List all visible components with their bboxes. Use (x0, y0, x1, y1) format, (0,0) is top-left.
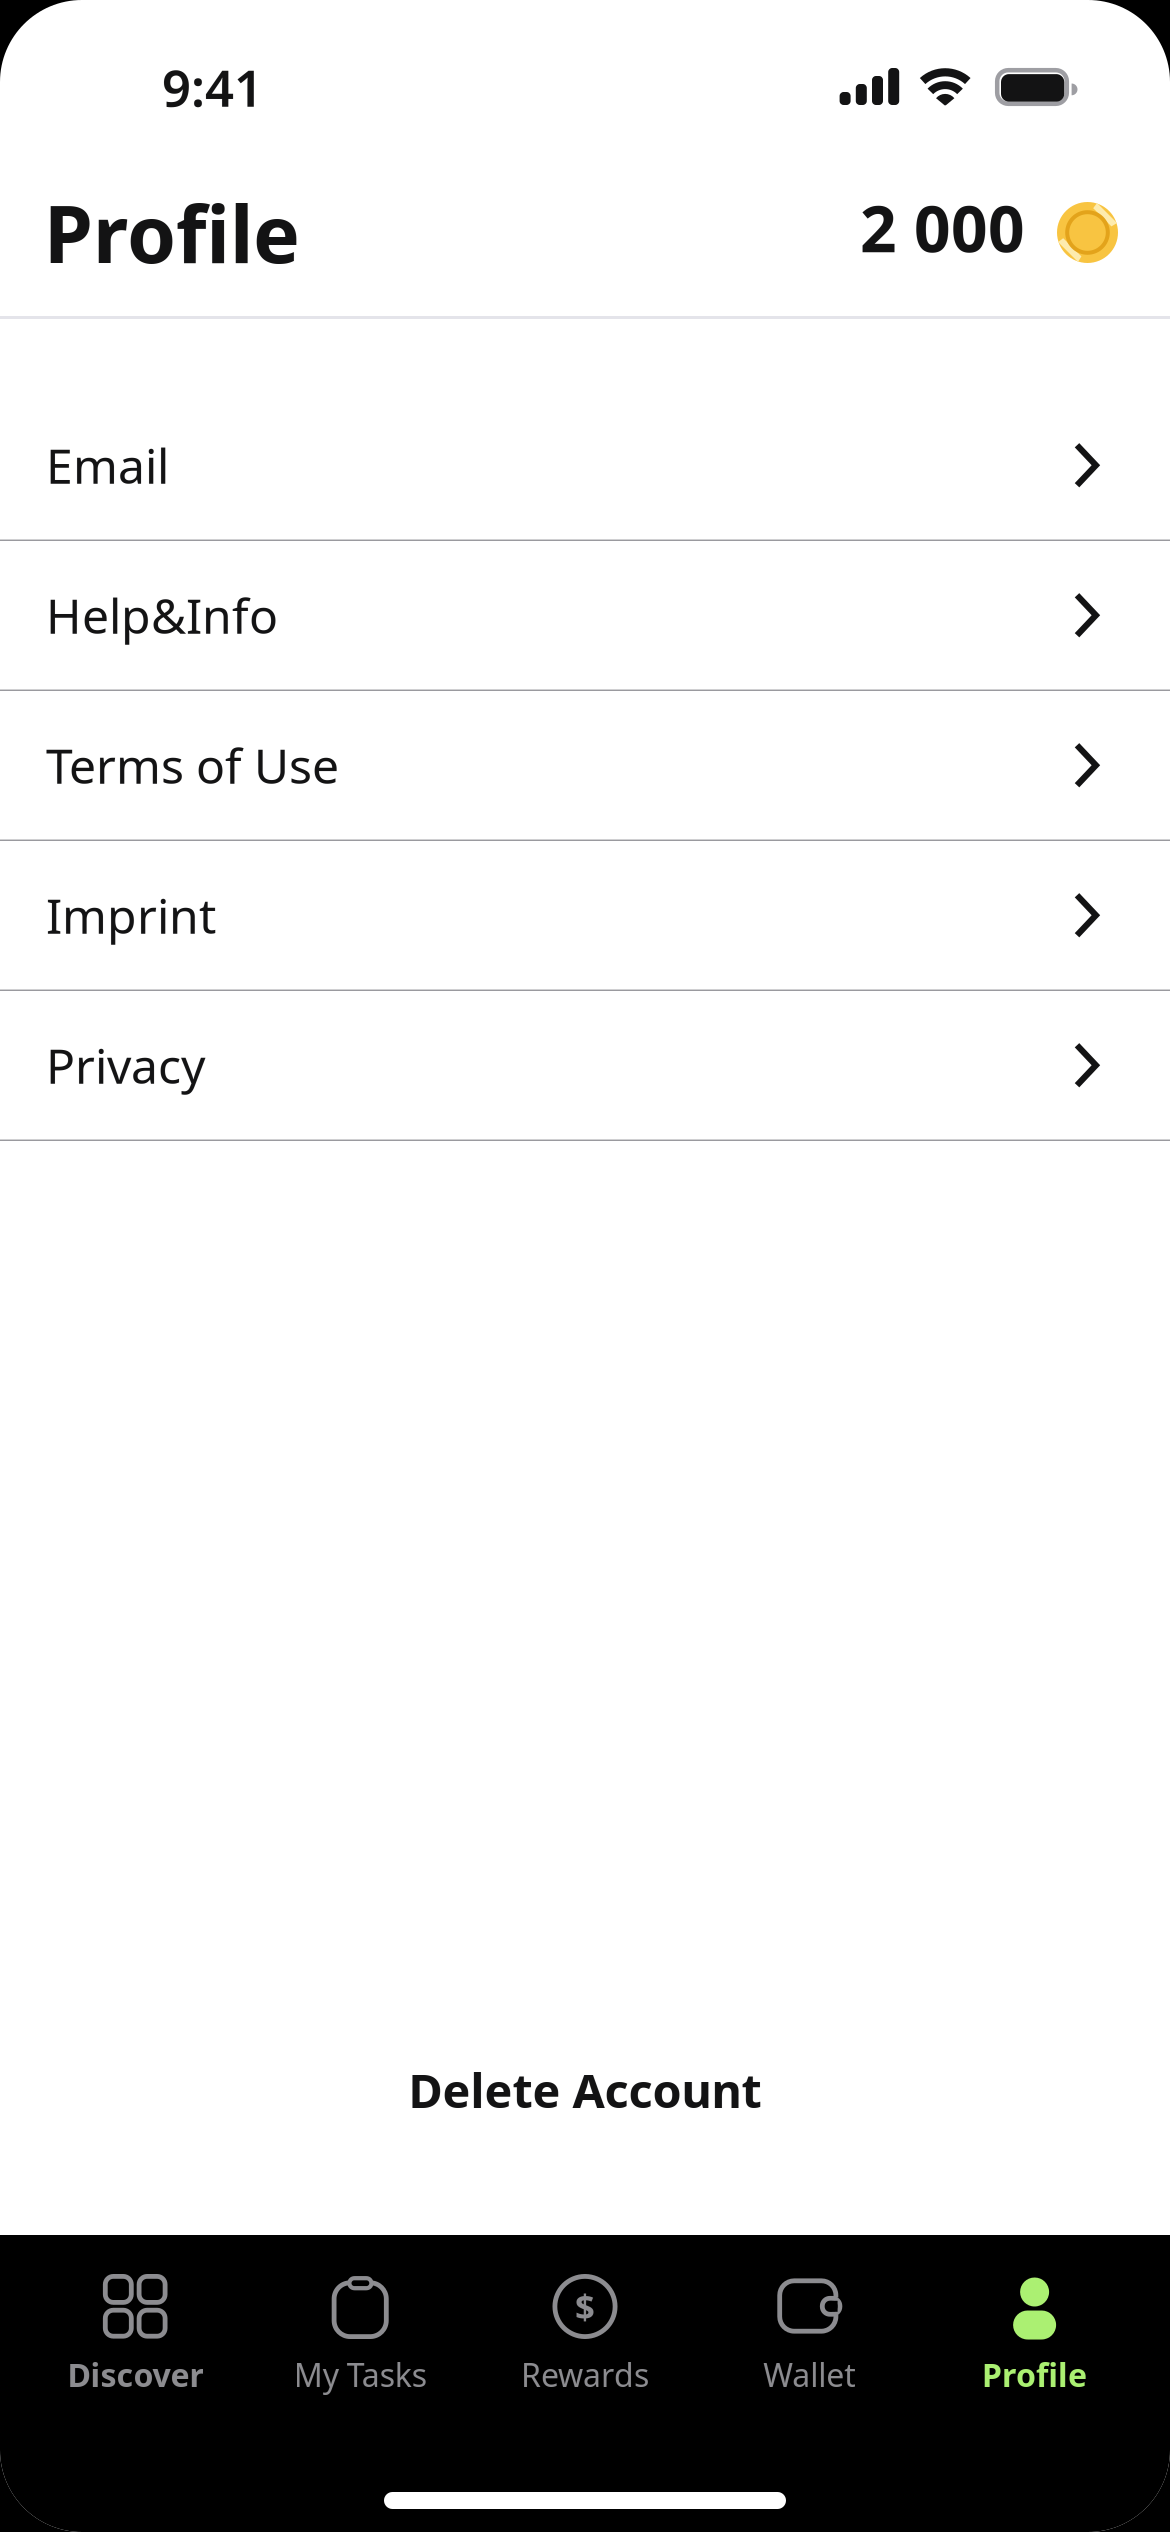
staticText: Profile (982, 2353, 1087, 2396)
staticText: Help&Info (46, 583, 278, 647)
button[interactable]: $ (473, 2274, 697, 2392)
staticText: Email (46, 433, 169, 497)
button[interactable]: Discover (23, 2274, 248, 2392)
button[interactable]: Imprint (0, 841, 1170, 989)
button[interactable]: Profile (922, 2274, 1147, 2392)
staticText: Delete Account (408, 2059, 761, 2121)
button[interactable]: Terms of Use (0, 691, 1170, 839)
staticText: Privacy (46, 1033, 205, 1097)
staticText: 2 000 (860, 185, 1025, 270)
staticText: 9:41 (162, 53, 263, 121)
staticText: Profile (44, 180, 300, 285)
staticText: Imprint (46, 883, 216, 947)
staticText: Terms of Use (46, 733, 339, 797)
button[interactable]: My Tasks (248, 2274, 473, 2392)
button[interactable]: Delete Account (0, 2042, 1170, 2138)
button[interactable]: 2 000 (860, 185, 1118, 280)
button[interactable]: Wallet (697, 2274, 922, 2392)
staticText: My Tasks (294, 2353, 427, 2396)
button[interactable]: Help&Info (0, 541, 1170, 689)
button[interactable]: Email (0, 391, 1170, 539)
staticText: $ (575, 2283, 595, 2329)
staticText: Wallet (763, 2353, 856, 2396)
button[interactable]: Privacy (0, 991, 1170, 1139)
staticText: Discover (67, 2353, 203, 2396)
staticText: Rewards (521, 2353, 649, 2396)
